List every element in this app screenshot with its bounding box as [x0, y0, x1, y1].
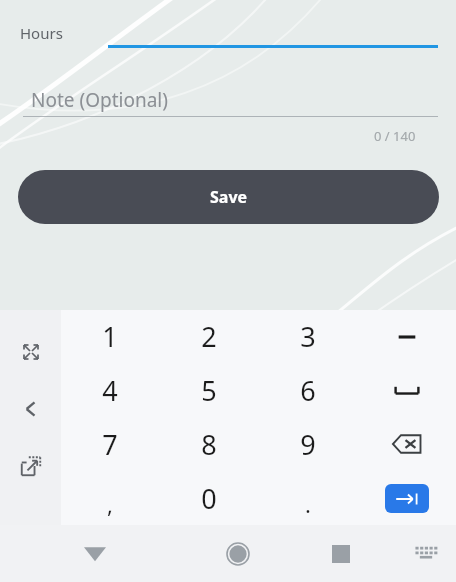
staticText: 9 — [300, 426, 316, 463]
button[interactable]: Backspace — [357, 417, 456, 471]
button[interactable]: Switch keyboard — [396, 525, 456, 582]
button[interactable]: Floating keyboard — [9, 444, 53, 488]
staticText: 7 — [102, 426, 118, 463]
button[interactable]: . — [258, 471, 357, 525]
button[interactable]: 7 — [61, 417, 159, 471]
button[interactable]: 8 — [159, 417, 258, 471]
button[interactable]: 5 — [159, 363, 258, 417]
staticText: 2 — [201, 318, 217, 355]
button[interactable]: , — [61, 471, 159, 525]
button[interactable]: Home — [190, 525, 286, 582]
button[interactable]: 6 — [258, 363, 357, 417]
button[interactable]: Minus — [357, 310, 456, 363]
button[interactable]: Save — [18, 170, 439, 224]
staticText: , — [107, 489, 113, 519]
staticText: 0 — [201, 480, 217, 517]
staticText: 8 — [201, 426, 217, 463]
staticText: Note (Optional) — [31, 87, 168, 113]
button[interactable]: 3 — [258, 310, 357, 363]
staticText: 1 — [102, 318, 118, 355]
staticText: 0 / 140 — [374, 127, 416, 145]
staticText: . — [305, 489, 311, 519]
button[interactable]: 2 — [159, 310, 258, 363]
staticText: Save — [210, 186, 248, 208]
button[interactable]: 9 — [258, 417, 357, 471]
button[interactable]: Back — [9, 387, 53, 431]
button[interactable]: 4 — [61, 363, 159, 417]
button[interactable]: Space — [357, 363, 456, 417]
staticText: 6 — [300, 372, 316, 409]
button[interactable]: Enter — [357, 471, 456, 525]
button[interactable]: 1 — [61, 310, 159, 363]
button[interactable]: Recents — [286, 525, 396, 582]
button[interactable]: 0 — [159, 471, 258, 525]
staticText: Hours — [20, 23, 63, 43]
staticText: 3 — [300, 318, 316, 355]
button[interactable]: Resize keyboard — [9, 330, 53, 374]
staticText: 5 — [201, 372, 217, 409]
staticText: 4 — [102, 372, 118, 409]
button[interactable]: Hide keyboard — [0, 525, 190, 582]
